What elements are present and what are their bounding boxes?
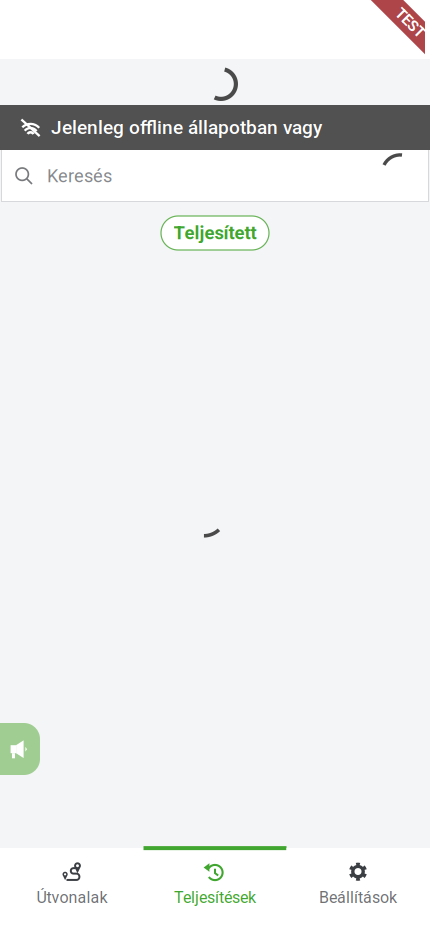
button[interactable]: Útvonalak	[0, 848, 143, 913]
button[interactable]: Beállítások	[286, 848, 429, 913]
button[interactable]: Teljesített	[161, 216, 269, 250]
staticText: Teljesített	[173, 222, 256, 244]
staticText: Teljesítések	[174, 888, 256, 907]
button[interactable]: Hirdetmény küldése	[0, 723, 40, 775]
staticText: Útvonalak	[36, 888, 107, 907]
staticText: Beállítások	[319, 888, 397, 907]
staticText: Keresés	[47, 165, 112, 187]
button[interactable]: Teljesítések	[143, 848, 286, 913]
button[interactable]: Keresés	[1, 150, 429, 202]
staticText: TEST	[392, 14, 427, 32]
staticText: Jelenleg offline állapotban vagy	[51, 116, 322, 139]
